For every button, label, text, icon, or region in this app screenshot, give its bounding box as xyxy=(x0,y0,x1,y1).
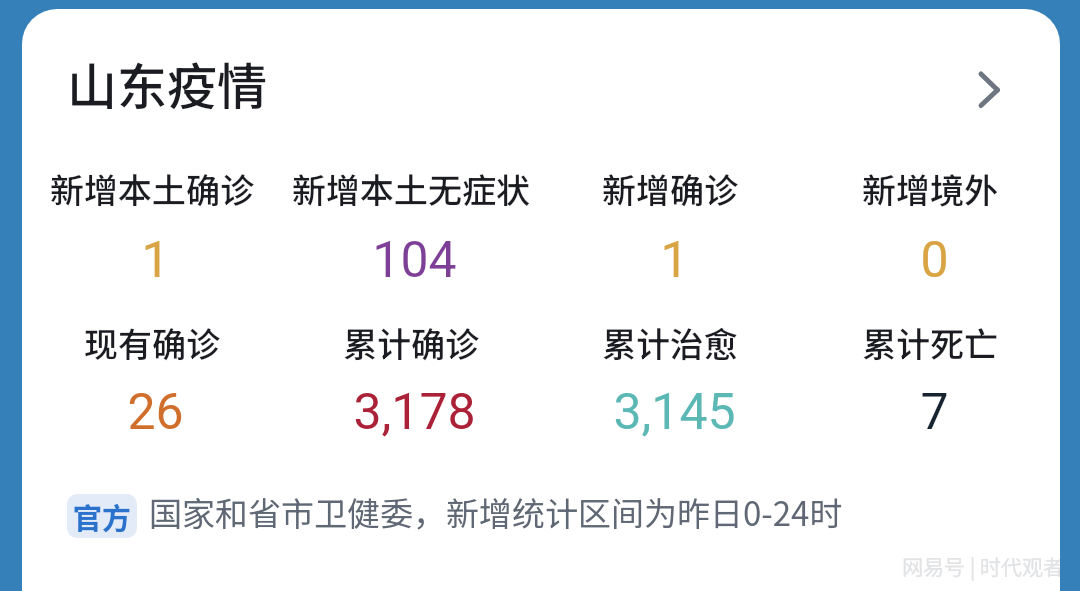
staticText: 1 xyxy=(660,231,689,290)
staticText: 104 xyxy=(372,231,457,290)
staticText: 7 xyxy=(920,383,949,442)
button[interactable]: 新增本土确诊 1 xyxy=(22,164,281,213)
staticText: 新增本土无症状 xyxy=(292,164,530,213)
staticText: 累计治愈 xyxy=(602,318,738,367)
staticText: 新增确诊 xyxy=(602,164,738,213)
staticText: 国家和省市卫健委，新增统计区间为昨日0-24时 xyxy=(149,488,843,536)
staticText: 累计死亡 xyxy=(862,318,998,367)
button[interactable]: 新增境外 0 xyxy=(800,164,1060,213)
button[interactable]: 累计死亡 7 xyxy=(800,318,1060,367)
button[interactable]: 累计确诊 3,178 xyxy=(281,318,540,367)
button[interactable]: 官方 xyxy=(67,494,137,538)
staticText: 现有确诊 xyxy=(84,318,220,367)
staticText: 官方 xyxy=(73,495,132,537)
staticText: 累计确诊 xyxy=(343,318,479,367)
staticText: 0 xyxy=(920,231,949,290)
staticText: 26 xyxy=(127,383,184,442)
button[interactable]: 新增本土无症状 104 xyxy=(281,164,540,213)
button[interactable]: 现有确诊 26 xyxy=(22,318,281,367)
staticText: 网易号 | 时代观者 xyxy=(902,551,1060,581)
button[interactable]: 山东疫情 xyxy=(22,9,1060,137)
staticText: 新增本土确诊 xyxy=(50,164,254,213)
staticText: 3,145 xyxy=(613,383,736,442)
staticText: 1 xyxy=(141,231,170,290)
staticText: 3,178 xyxy=(353,383,476,442)
button[interactable]: 新增确诊 1 xyxy=(540,164,800,213)
button[interactable]: 累计治愈 3,145 xyxy=(540,318,800,367)
button[interactable]: 查看山东疫情详情 xyxy=(940,49,1000,109)
staticText: 新增境外 xyxy=(862,164,998,213)
staticText: 山东疫情 xyxy=(67,47,267,119)
